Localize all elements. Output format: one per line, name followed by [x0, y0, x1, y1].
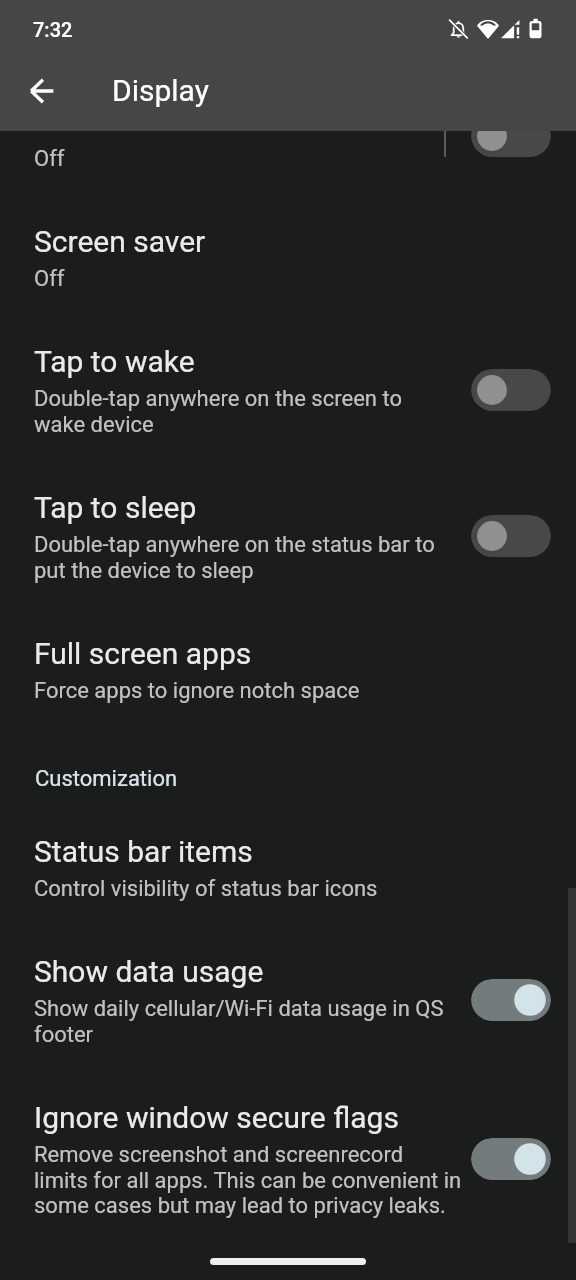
staticText: Screen saver mode [34, 101, 289, 136]
staticText: Off [34, 266, 65, 292]
staticText: Ignore window secure flags [34, 1100, 399, 1135]
button[interactable]: Full screen apps [0, 636, 576, 732]
staticText: Force apps to ignore notch space [34, 678, 360, 704]
staticText: Tap to sleep [34, 490, 197, 525]
staticText: Control visibility of status bar icons [34, 876, 378, 902]
staticText: Off [34, 146, 65, 172]
staticText: 7:32 [33, 18, 73, 41]
staticText: Full screen apps [34, 636, 252, 671]
button[interactable]: Screen saver mode [0, 85, 576, 175]
staticText: Remove screenshot and screenrecord limit… [34, 1142, 462, 1218]
staticText: Status bar items [34, 834, 253, 869]
staticText: Show data usage [34, 954, 264, 989]
staticText: Double-tap anywhere on the status bar to… [34, 532, 435, 583]
staticText: Double-tap anywhere on the screen to wak… [34, 386, 402, 437]
button[interactable]: Screen saver [0, 224, 576, 324]
staticText: Show daily cellular/Wi-Fi data usage in … [34, 996, 444, 1047]
staticText: Display [112, 73, 209, 108]
button[interactable]: Tap to wake [0, 344, 576, 464]
button[interactable]: On [471, 979, 551, 1021]
button[interactable]: Off [471, 115, 551, 157]
button[interactable]: On [471, 1138, 551, 1180]
button[interactable]: Off [471, 369, 551, 411]
staticText: Customization [35, 766, 178, 792]
button[interactable]: Tap to sleep [0, 490, 576, 610]
staticText: Screen saver [34, 224, 206, 259]
button[interactable]: Off [471, 515, 551, 557]
button[interactable]: Show data usage [0, 954, 576, 1074]
button[interactable]: Ignore window secure flags [0, 1100, 576, 1240]
button[interactable]: Status bar items [0, 834, 576, 930]
button[interactable]: Navigate up [18, 67, 66, 115]
staticText: Tap to wake [34, 344, 195, 379]
